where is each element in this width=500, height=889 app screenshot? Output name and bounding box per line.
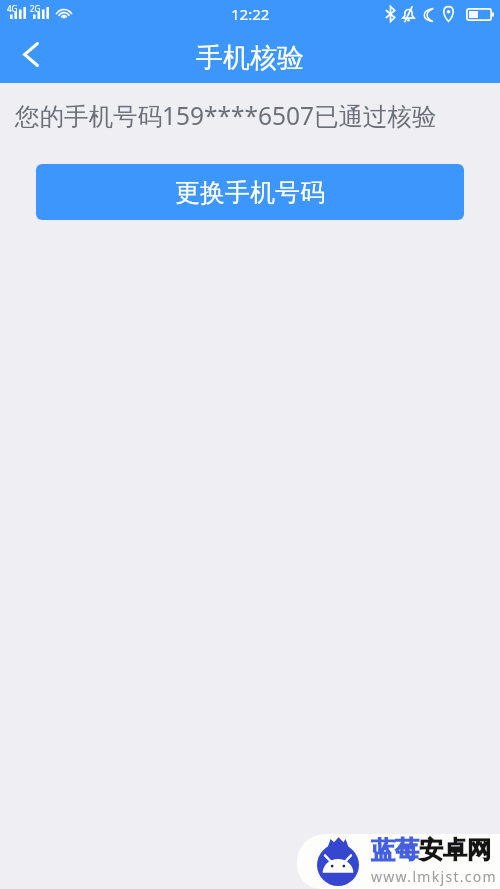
staticText: 2G [30, 3, 41, 14]
staticText: 12:22 [231, 4, 270, 24]
staticText: 蓝莓 [371, 835, 419, 865]
staticText: www.lmkjst.com [371, 867, 497, 886]
staticText: 您的手机号码159****6507已通过核验 [15, 99, 437, 132]
staticText: 4G [7, 3, 18, 14]
button[interactable]: 更换手机号码 [36, 164, 464, 220]
staticText: 更换手机号码 [175, 177, 325, 208]
button[interactable]: Back [7, 30, 55, 78]
staticText: 手机核验 [196, 41, 304, 75]
staticText: 安卓网 [419, 835, 491, 865]
